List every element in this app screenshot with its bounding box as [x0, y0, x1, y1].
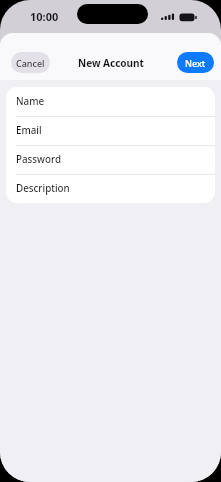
- button[interactable]: Next: [177, 52, 214, 73]
- button[interactable]: Email: [6, 116, 215, 145]
- button[interactable]: Name: [6, 87, 215, 116]
- button[interactable]: Cancel: [11, 52, 50, 73]
- staticText: Description: [16, 182, 70, 195]
- button[interactable]: Description: [6, 174, 215, 203]
- staticText: Cancel: [16, 57, 45, 69]
- staticText: Name: [16, 95, 45, 108]
- staticText: 10:00: [30, 9, 59, 24]
- staticText: New Account: [78, 56, 144, 70]
- staticText: Next: [185, 57, 206, 69]
- staticText: Email: [16, 124, 42, 137]
- button[interactable]: Password: [6, 145, 215, 174]
- staticText: Password: [16, 153, 62, 166]
